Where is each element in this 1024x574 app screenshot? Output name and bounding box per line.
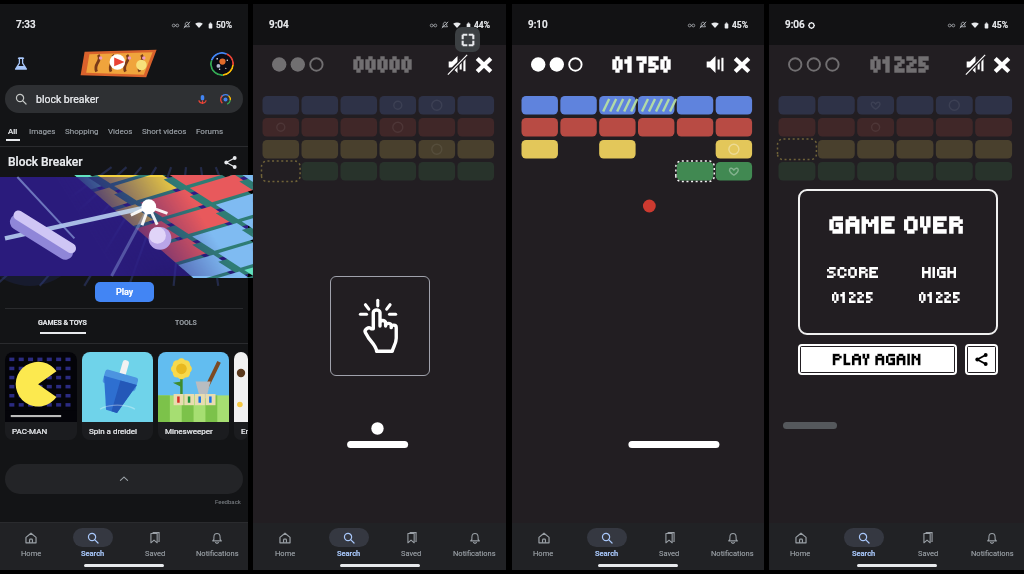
button[interactable]: Search (575, 525, 638, 560)
staticText: 01750 (613, 51, 673, 78)
button[interactable]: Search (832, 525, 896, 560)
button[interactable]: Sound (965, 54, 986, 75)
button[interactable]: Search (62, 525, 124, 560)
button[interactable]: Home (769, 525, 832, 560)
button[interactable]: Search (317, 525, 380, 560)
staticText: Saved (401, 549, 422, 558)
staticText: Notifications (711, 549, 754, 558)
button[interactable]: Saved (896, 525, 960, 560)
staticText: Search (81, 549, 105, 558)
staticText: 7:33 (16, 19, 36, 31)
staticText: PLAY AGAIN (833, 350, 923, 369)
button[interactable]: Share (968, 347, 995, 372)
button[interactable]: Close (474, 55, 494, 75)
button[interactable]: Notifications (186, 525, 248, 560)
button[interactable]: Doodle (79, 48, 159, 79)
staticText: Home (275, 549, 296, 558)
button[interactable]: Em (234, 352, 248, 440)
button[interactable]: Home (0, 525, 62, 560)
button[interactable]: Expand (5, 464, 243, 494)
staticText: 9:10 (528, 19, 548, 31)
button[interactable]: Close (732, 55, 752, 75)
staticText: 9:06 (785, 19, 805, 31)
staticText: 45% (732, 20, 748, 30)
button[interactable]: Notifications (443, 525, 506, 560)
staticText: 44% (474, 20, 490, 30)
staticText: 9:04 (269, 19, 289, 31)
button[interactable]: Home (512, 525, 575, 560)
staticText: Notifications (971, 549, 1014, 558)
staticText: 01225 (871, 51, 931, 78)
staticText: 45% (992, 20, 1008, 30)
button[interactable]: Sound (447, 54, 468, 75)
staticText: GAME OVER (830, 211, 966, 239)
button[interactable]: Saved (380, 525, 443, 560)
button[interactable]: All (6, 127, 20, 141)
button[interactable]: Share (223, 155, 238, 170)
staticText: Saved (659, 549, 680, 558)
button[interactable]: Notifications (701, 525, 764, 560)
button[interactable]: TOOLS (124, 309, 248, 343)
button[interactable]: GAMES & TOYS (0, 309, 124, 343)
staticText: Saved (145, 549, 166, 558)
staticText: GAMES & TOYS (38, 319, 87, 327)
staticText: Feedback (215, 498, 241, 505)
staticText: SCORE (827, 263, 881, 282)
staticText: Minesweeper (165, 427, 213, 436)
staticText: Shopping (65, 127, 99, 136)
button[interactable]: PLAY AGAIN (801, 347, 954, 372)
staticText: PAC-MAN (12, 427, 48, 436)
staticText: Notifications (196, 549, 239, 558)
staticText: Images (29, 127, 56, 136)
button[interactable]: Videos (108, 127, 133, 141)
staticText: 00000 (354, 51, 414, 78)
staticText: Search (852, 549, 876, 558)
staticText: Forums (196, 127, 224, 136)
staticText: Home (790, 549, 811, 558)
staticText: Search (595, 549, 619, 558)
staticText: 01225 (832, 288, 875, 307)
button[interactable]: Sound (705, 54, 726, 75)
staticText: Spin a dreidel (89, 427, 137, 436)
button[interactable]: block breaker (5, 85, 243, 113)
button[interactable]: Minesweeper (158, 352, 229, 440)
staticText: Saved (918, 549, 939, 558)
button[interactable]: Account (210, 52, 234, 76)
staticText: HIGH (922, 263, 959, 282)
button[interactable]: Close (992, 55, 1012, 75)
button[interactable]: Short videos (142, 127, 187, 141)
button[interactable]: Notifications (960, 525, 1024, 560)
button[interactable]: Fullscreen (455, 27, 480, 52)
staticText: Play (116, 287, 134, 298)
staticText: Short videos (142, 127, 187, 136)
button[interactable]: Home (253, 525, 317, 560)
staticText: 50% (216, 20, 232, 30)
button[interactable]: Saved (638, 525, 701, 560)
button[interactable]: Play (95, 282, 154, 302)
button[interactable]: Images (29, 127, 56, 141)
staticText: block breaker (36, 93, 99, 105)
button[interactable]: Labs (13, 56, 29, 72)
staticText: All (8, 127, 18, 136)
staticText: 01225 (919, 288, 962, 307)
button[interactable]: Forums (196, 127, 224, 141)
staticText: Search (337, 549, 361, 558)
button[interactable]: Spin a dreidel (82, 352, 153, 440)
button[interactable]: Shopping (65, 127, 99, 141)
staticText: Home (21, 549, 42, 558)
button[interactable]: Tap to play (330, 276, 430, 376)
staticText: Notifications (453, 549, 496, 558)
staticText: TOOLS (175, 319, 197, 327)
staticText: Videos (108, 127, 133, 136)
staticText: Block Breaker (8, 155, 83, 169)
button[interactable]: Saved (124, 525, 186, 560)
staticText: Em (241, 427, 248, 436)
staticText: Home (533, 549, 554, 558)
button[interactable]: PAC-MAN (5, 352, 77, 440)
